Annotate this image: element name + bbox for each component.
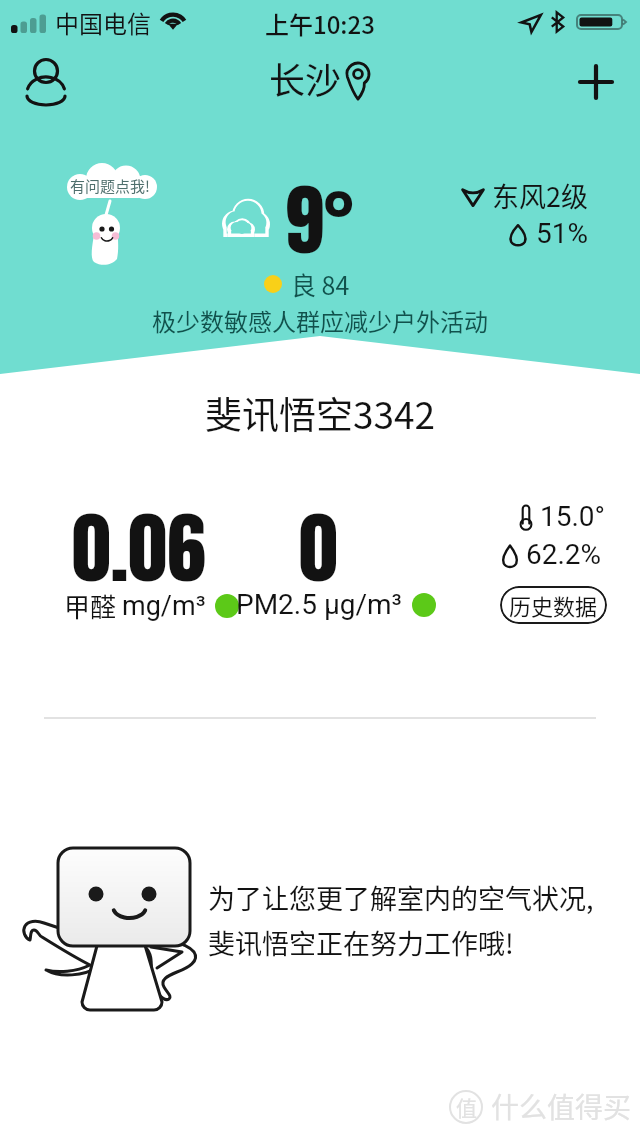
button[interactable]: 长沙 (269, 52, 371, 104)
staticText: 历史数据 (509, 589, 598, 621)
staticText: 为了让您更了解室内的空气状况, (208, 878, 594, 917)
staticText: PM2.5 μg/m³ (236, 588, 402, 621)
staticText: 东风2级 (492, 176, 588, 215)
staticText: 值 (456, 1092, 477, 1122)
staticText: 极少数敏感人群应减少户外活动 (152, 303, 488, 338)
staticText: mg/m³ (122, 590, 206, 622)
button[interactable]: 斐讯悟空3342 (205, 386, 436, 440)
button[interactable]: Account (20, 56, 72, 108)
staticText: 0.06 (72, 489, 206, 606)
staticText: 9° (285, 161, 354, 278)
staticText: 62.2% (526, 538, 602, 571)
staticText: 什么值得买 (491, 1086, 632, 1127)
staticText: 上午10:23 (265, 6, 375, 41)
staticText: 51% (536, 217, 588, 250)
button[interactable]: Assistant (62, 157, 182, 287)
staticText: 15.0° (540, 500, 606, 533)
button[interactable]: 历史数据 (500, 586, 607, 624)
staticText: 0 (299, 489, 338, 606)
staticText: 良 84 (291, 266, 350, 302)
staticText: 斐讯悟空正在努力工作哦! (208, 923, 514, 962)
staticText: 甲醛 (64, 587, 122, 625)
button[interactable]: Add device (570, 56, 622, 108)
staticText: 中国电信 (55, 5, 151, 40)
staticText: 长沙 (269, 52, 342, 104)
staticText: 有问题点我! (70, 175, 150, 197)
